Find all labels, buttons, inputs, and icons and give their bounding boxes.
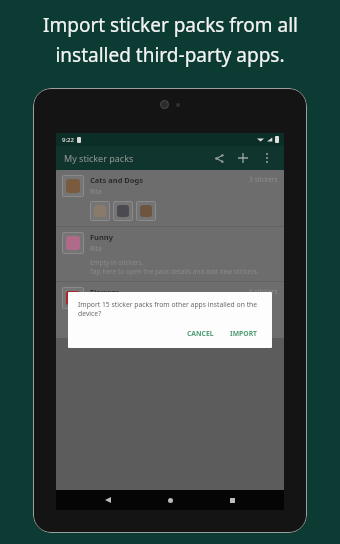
staticText: Flowers: [90, 287, 119, 297]
staticText: My sticker packs: [64, 152, 134, 164]
staticText: Cats and Dogs: [90, 175, 144, 185]
staticText: Daniele: [90, 299, 114, 308]
staticText: Rita: [90, 187, 102, 196]
button[interactable]: Funny: [56, 227, 284, 281]
staticText: Funny: [90, 232, 114, 242]
staticText: IMPORT: [230, 329, 258, 338]
staticText: Import sticker packs from all: [43, 12, 298, 38]
button[interactable]: Cats and Dogs: [56, 170, 284, 226]
staticText: CANCEL: [187, 329, 214, 338]
button[interactable]: Share: [210, 149, 228, 167]
staticText: Import 15 sticker packs from other apps …: [78, 300, 262, 318]
staticText: 9:22: [62, 136, 74, 144]
button[interactable]: Add sticker pack: [234, 149, 252, 167]
staticText: 3 stickers: [249, 175, 278, 184]
staticText: 6 stickers: [249, 287, 278, 296]
button[interactable]: IMPORT: [226, 327, 262, 340]
button[interactable]: Recent apps: [222, 490, 242, 510]
button[interactable]: Back: [98, 490, 118, 510]
button[interactable]: More options: [258, 149, 276, 167]
button[interactable]: Home: [160, 490, 180, 510]
staticText: Rita: [90, 244, 102, 253]
staticText: installed third-party apps.: [55, 42, 285, 68]
button[interactable]: CANCEL: [183, 327, 218, 340]
staticText: Tap here to open the pack details and ad…: [90, 267, 259, 276]
button[interactable]: Flowers: [56, 282, 284, 338]
staticText: Empty in stickers.: [90, 258, 144, 267]
